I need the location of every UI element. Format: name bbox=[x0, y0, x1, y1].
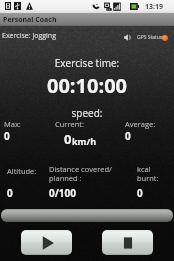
staticText: Exercise time: bbox=[0, 56, 174, 70]
button[interactable]: Sound bbox=[124, 34, 131, 41]
staticText: Current: bbox=[55, 119, 84, 129]
staticText: Max: bbox=[4, 119, 21, 129]
staticText: Distance covered/ planned : bbox=[49, 164, 112, 183]
staticText: GPS Status: bbox=[137, 34, 164, 41]
staticText: Altitude: bbox=[7, 166, 37, 176]
staticText: 0 bbox=[125, 129, 131, 143]
staticText: Average: bbox=[125, 119, 156, 129]
staticText: Personal Coach bbox=[3, 15, 57, 25]
staticText: speed: bbox=[0, 106, 174, 120]
staticText: 0 bbox=[64, 130, 72, 148]
staticText: 0 bbox=[137, 186, 143, 200]
staticText: 0 bbox=[4, 129, 10, 143]
button[interactable]: Start bbox=[21, 230, 72, 255]
staticText: 0/100 bbox=[49, 186, 77, 200]
staticText: km/h bbox=[72, 135, 97, 147]
staticText: 0 bbox=[7, 186, 13, 200]
staticText: Exercise: Jogging bbox=[2, 31, 56, 41]
staticText: 13:19 bbox=[145, 2, 164, 12]
staticText: 00:10:00 bbox=[0, 72, 174, 99]
staticText: kcal burnt: bbox=[137, 164, 159, 183]
button[interactable]: Stop bbox=[102, 230, 153, 255]
